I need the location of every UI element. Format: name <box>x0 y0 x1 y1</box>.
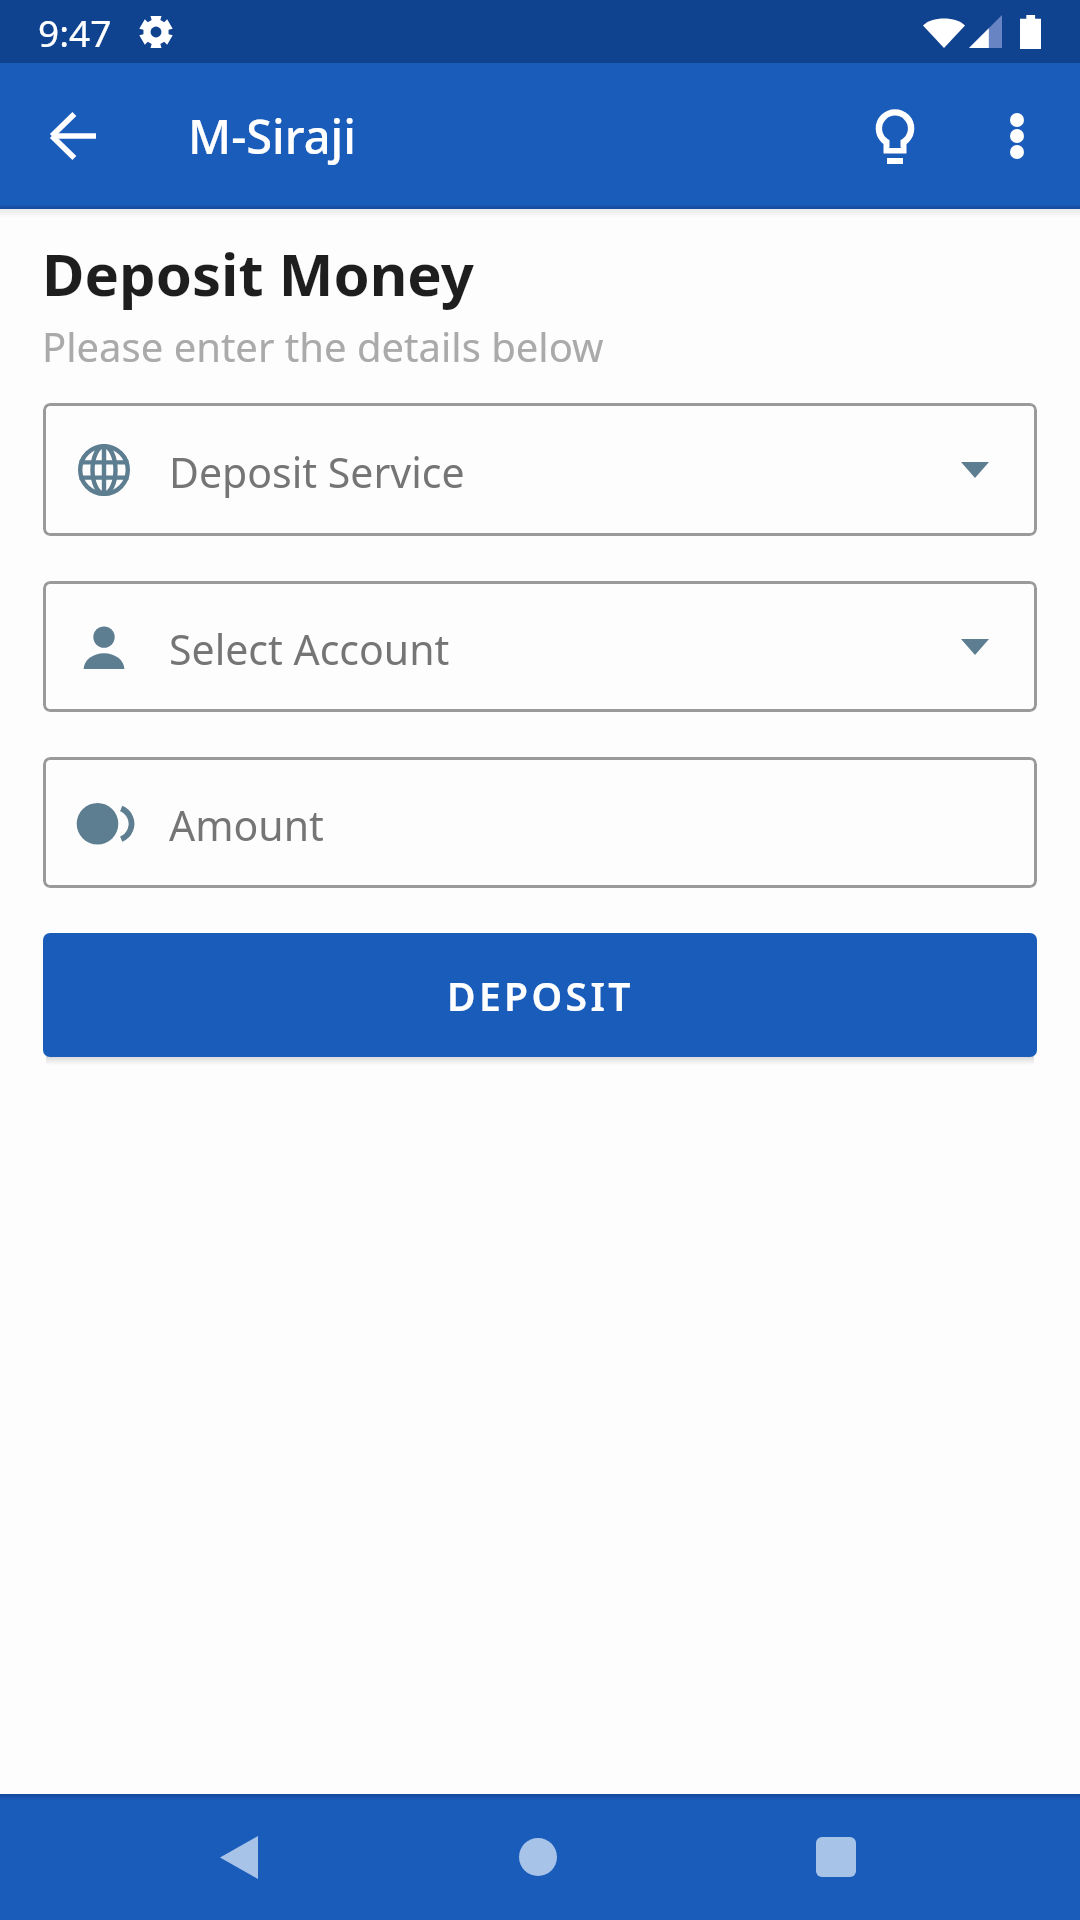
button[interactable]: Amount <box>43 757 1037 888</box>
staticText: 9:47 <box>38 7 112 57</box>
staticText: M-Siraji <box>188 104 356 168</box>
staticText: Please enter the details below <box>42 319 604 373</box>
button[interactable]: Back <box>189 1807 289 1907</box>
staticText: Deposit Service <box>169 444 465 500</box>
button[interactable]: Back <box>0 63 146 209</box>
button[interactable]: DEPOSIT <box>43 933 1037 1057</box>
button[interactable]: Deposit Service <box>43 403 1037 536</box>
button[interactable]: Home <box>488 1807 588 1907</box>
button[interactable]: Select Account <box>43 581 1037 712</box>
button[interactable]: Tips <box>836 63 954 209</box>
staticText: Amount <box>169 797 324 853</box>
button[interactable]: Recents <box>786 1807 886 1907</box>
staticText: DEPOSIT <box>447 969 634 1022</box>
staticText: Select Account <box>169 621 450 677</box>
button[interactable]: More options <box>954 63 1080 209</box>
staticText: Deposit Money <box>42 234 474 313</box>
